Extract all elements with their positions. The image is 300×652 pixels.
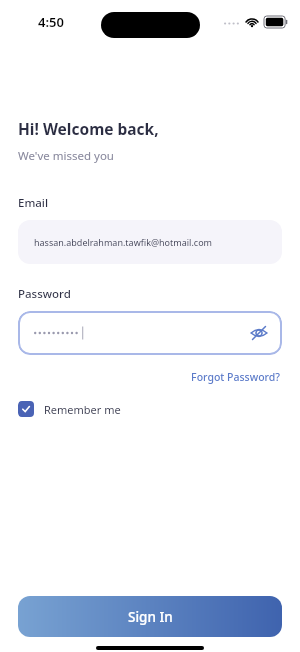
- staticText: Email: [18, 195, 49, 211]
- staticText: We've missed you: [18, 148, 114, 164]
- staticText: Hi! Welcome back,: [18, 118, 159, 139]
- button[interactable]: hassan.abdelrahman.tawfik@hotmail.com: [18, 220, 282, 264]
- staticText: hassan.abdelrahman.tawfik@hotmail.com: [34, 236, 213, 248]
- button[interactable]: Sign In: [18, 596, 282, 637]
- staticText: 4:50: [38, 13, 64, 31]
- button[interactable]: Forgot Password?: [189, 368, 282, 386]
- staticText: Forgot Password?: [191, 370, 280, 384]
- staticText: Password: [18, 286, 71, 302]
- staticText: Sign In: [128, 608, 173, 626]
- button[interactable]: Hide password: [242, 316, 276, 350]
- button[interactable]: Hide password: [18, 311, 282, 355]
- staticText: Remember me: [44, 402, 121, 417]
- button[interactable]: Remember me: [18, 399, 121, 419]
